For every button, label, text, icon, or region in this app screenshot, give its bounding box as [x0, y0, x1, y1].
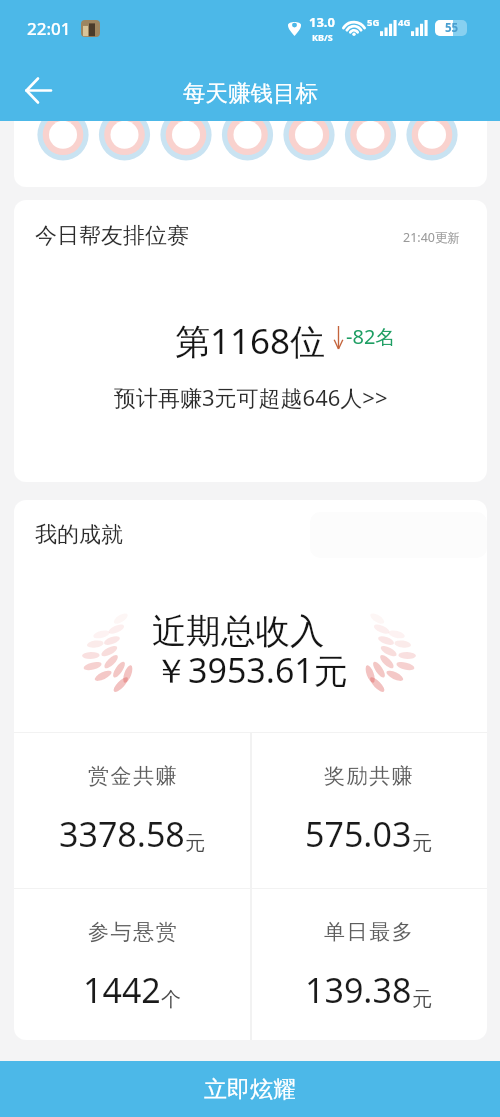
staticText: 我的成就	[35, 521, 123, 549]
button[interactable]: 赏金共赚	[14, 732, 250, 888]
staticText: 奖励共赚	[324, 763, 415, 789]
staticText: ￥3953.61元	[154, 647, 348, 693]
staticText: 立即炫耀	[204, 1075, 296, 1104]
staticText: -82名	[346, 323, 396, 350]
button[interactable]: 奖励共赚	[250, 732, 486, 888]
button[interactable]: 参与悬赏	[14, 888, 250, 1040]
button[interactable]: Daily task avatars	[14, 121, 487, 187]
staticText: KB/S	[312, 31, 333, 43]
staticText: 单日最多	[324, 919, 415, 945]
button[interactable]: Back	[14, 66, 62, 114]
staticText: 近期总收入	[152, 610, 325, 653]
staticText: 个	[161, 987, 181, 1012]
button[interactable]: 单日最多	[250, 888, 486, 1040]
staticText: 1442	[83, 967, 161, 1013]
staticText: 赏金共赚	[88, 763, 179, 789]
staticText: 4G	[398, 16, 411, 29]
staticText: 13.0	[309, 13, 335, 31]
staticText: 22:01	[27, 17, 71, 40]
button[interactable]: 立即炫耀	[0, 1061, 500, 1117]
staticText: 今日帮友排位赛	[35, 222, 189, 250]
staticText: 元	[185, 831, 205, 856]
staticText: 139.38	[305, 967, 412, 1013]
staticText: 21:40更新	[403, 229, 460, 246]
staticText: 575.03	[305, 811, 412, 857]
staticText: 元	[412, 831, 432, 856]
staticText: 55	[445, 20, 459, 36]
staticText: 预计再赚3元可超越646人>>	[114, 382, 388, 412]
staticText: 3378.58	[59, 811, 185, 857]
staticText: 元	[412, 987, 432, 1012]
staticText: 参与悬赏	[88, 919, 179, 945]
staticText: 第1168位	[175, 317, 326, 365]
staticText: 5G	[367, 16, 380, 29]
staticText: 每天赚钱目标	[183, 79, 318, 107]
